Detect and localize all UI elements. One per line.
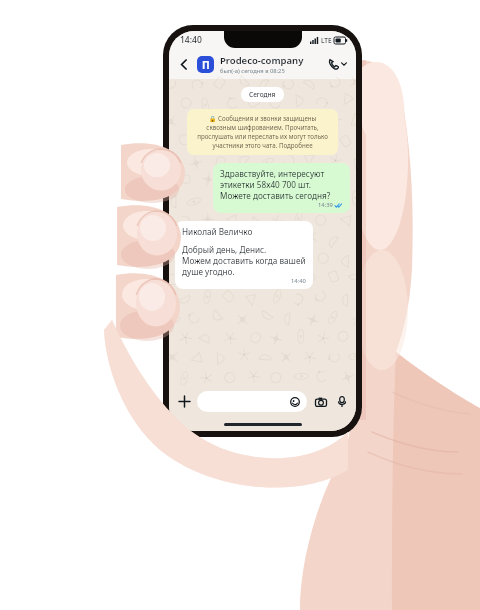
staticText: Добрый день, Денис. Можем доставить когд…	[182, 244, 306, 277]
button[interactable]	[197, 391, 307, 412]
button[interactable]: Voice message	[335, 394, 349, 408]
button[interactable]: 🔒 Сообщения и звонки защищены сквозным ш…	[187, 109, 338, 155]
staticText: 14:40	[291, 277, 306, 285]
button[interactable]: Camera	[313, 394, 328, 409]
button[interactable]: Здравствуйте, интересуют этикетки 58х40 …	[213, 163, 350, 213]
staticText: 14:39	[318, 201, 333, 209]
staticText: Здравствуйте, интересуют этикетки 58х40 …	[220, 168, 343, 201]
staticText: Сегодня	[249, 90, 276, 99]
button[interactable]: Call	[326, 58, 349, 70]
staticText: 14:40	[180, 34, 202, 46]
button[interactable]: Сегодня	[249, 90, 276, 99]
button[interactable]: Николай Величко	[175, 221, 313, 289]
staticText: 🔒 Сообщения и звонки защищены сквозным ш…	[195, 114, 330, 150]
staticText: Prodeco-company	[220, 54, 304, 67]
staticText: Николай Величко	[182, 226, 253, 237]
staticText: LTE	[321, 36, 332, 45]
staticText: П	[202, 58, 210, 72]
staticText: был(-а) сегодня в 08:25	[220, 67, 285, 75]
button[interactable]: П	[197, 54, 326, 75]
button[interactable]: Attach	[176, 393, 192, 409]
button[interactable]: Back	[176, 56, 192, 72]
